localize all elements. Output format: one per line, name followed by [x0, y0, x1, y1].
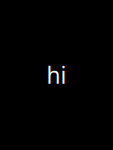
staticText: hi: [46, 60, 66, 90]
